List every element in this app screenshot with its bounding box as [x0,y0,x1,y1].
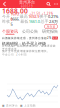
staticText: 公司公告 [22,29,38,34]
staticText: 1670.0 [11,11,20,22]
staticText: 中金公司 2小时前 [2,53,27,56]
button[interactable]: Search [45,0,52,8]
staticText: 1688.00 [2,7,28,15]
staticText: 加自选 [46,25,55,28]
button[interactable]: Back [0,0,9,8]
staticText: 600519 [21,5,33,8]
button[interactable]: 个股资讯 [0,29,20,35]
staticText: 公司高端产品结构持续优化，渠道库存处于合理水平， [2,44,56,51]
staticText: 1666.5 [11,16,20,27]
staticText: +1.29% [42,12,53,15]
staticText: 1661.0 [29,19,40,24]
staticText: 0.21% [48,14,58,19]
button[interactable]: 研究报告 [40,29,60,35]
staticText: 研究报告 [42,29,58,34]
staticText: 贵州茅台 [19,0,35,5]
staticText: 白酒板块持续走强，贵州茅台涨超2% [2,36,51,40]
staticText: 快讯 [52,36,58,40]
staticText: 换手 [39,14,47,19]
staticText: ■ 贵州茅台 ■ 上证指数 [2,104,36,107]
staticText: 机构研报：给予买入评级 [2,41,46,46]
staticText: 最低 [20,19,28,24]
staticText: 昨收 [2,19,10,24]
staticText: 今开 [2,14,10,19]
staticText: 1692.9 [28,14,39,19]
staticText: 总手 [40,19,48,24]
staticText: 最高 [20,14,28,19]
staticText: +21.50 [29,12,40,15]
staticText: 预计全年营收增速保持双位数增长。 [2,49,50,53]
button[interactable]: More [52,0,60,8]
staticText: 个股资讯 [2,29,18,34]
button[interactable]: 公司公告 [20,29,40,35]
button[interactable]: 机构研报：给予买入评级 [0,41,60,57]
button[interactable]: 白酒板块持续走强，贵州茅台涨超2% [0,35,60,41]
staticText: 2.6万 [49,19,58,24]
button[interactable]: 加自选 [44,24,57,29]
